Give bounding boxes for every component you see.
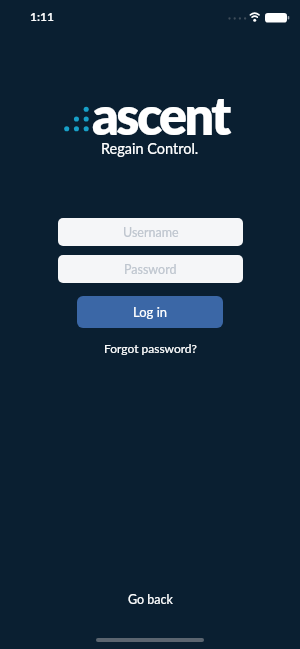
staticText: Regain Control. <box>101 140 199 157</box>
button[interactable]: Forgot password? <box>104 341 197 355</box>
staticText: Log in <box>133 304 168 320</box>
staticText: Go back <box>128 592 173 607</box>
staticText: Username <box>123 225 179 240</box>
staticText: Password <box>124 262 177 277</box>
button[interactable]: Password <box>58 255 243 283</box>
button[interactable]: Username <box>58 218 243 246</box>
staticText: ascent <box>92 84 229 146</box>
staticText: Forgot password? <box>104 341 197 355</box>
staticText: 1:11 <box>30 9 54 23</box>
button[interactable]: Go back <box>128 592 173 607</box>
button[interactable]: Log in <box>77 296 223 328</box>
